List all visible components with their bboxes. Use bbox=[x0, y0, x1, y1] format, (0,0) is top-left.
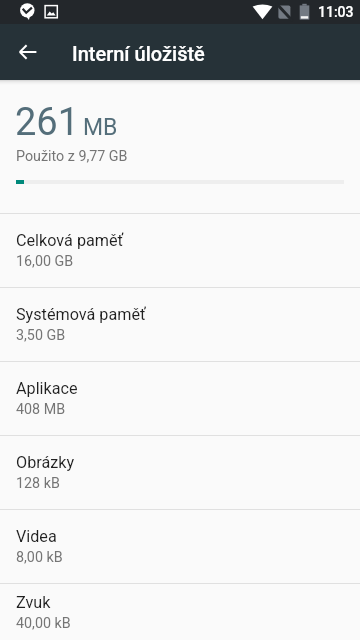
staticText: Obrázky bbox=[16, 453, 75, 472]
staticText: 3,50 GB bbox=[16, 327, 66, 344]
staticText: Použito z 9,77 GB bbox=[16, 148, 128, 165]
button[interactable]: Aplikace bbox=[0, 362, 360, 435]
staticText: 128 kB bbox=[16, 475, 60, 492]
staticText: 408 MB bbox=[16, 401, 66, 418]
button[interactable]: Zvuk bbox=[0, 584, 360, 640]
button[interactable]: Obrázky bbox=[0, 436, 360, 509]
button[interactable]: Celková paměť bbox=[0, 214, 360, 287]
staticText: 261 bbox=[15, 100, 80, 145]
staticText: 16,00 GB bbox=[16, 253, 74, 270]
button[interactable]: Back bbox=[0, 24, 56, 80]
staticText: Interní úložiště bbox=[72, 42, 205, 65]
staticText: Celková paměť bbox=[16, 231, 124, 250]
staticText: MB bbox=[83, 114, 118, 141]
button[interactable]: Videa bbox=[0, 510, 360, 583]
staticText: 11:03 bbox=[318, 4, 354, 20]
staticText: Systémová paměť bbox=[16, 305, 146, 324]
staticText: Zvuk bbox=[16, 593, 51, 612]
staticText: 8,00 kB bbox=[16, 549, 63, 566]
staticText: 40,00 kB bbox=[16, 615, 71, 632]
button[interactable]: Systémová paměť bbox=[0, 288, 360, 361]
staticText: Videa bbox=[16, 527, 57, 546]
staticText: Aplikace bbox=[16, 379, 78, 398]
